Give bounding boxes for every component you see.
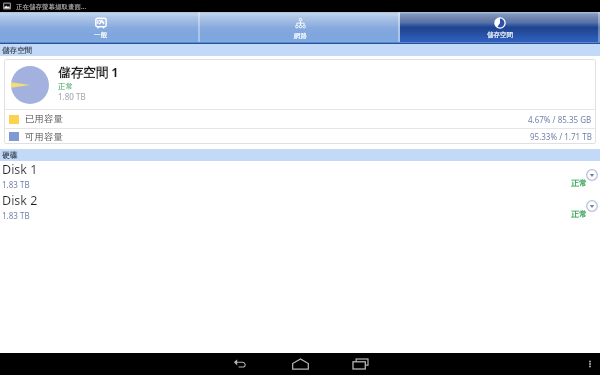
staticText: 1.83 TB <box>2 179 30 190</box>
staticText: 4.67% / 85.35 GB <box>528 114 592 125</box>
staticText: Disk 2 <box>2 192 38 209</box>
button[interactable]: 已用容量 <box>4 110 596 128</box>
button[interactable]: Recent apps <box>347 353 373 375</box>
button[interactable]: Back <box>227 353 253 375</box>
button[interactable]: Disk 2 <box>0 192 600 223</box>
staticText: 硬碟 <box>2 151 17 160</box>
staticText: 可用容量 <box>25 131 63 143</box>
other: General <box>95 17 107 29</box>
button[interactable]: 可用容量 <box>4 129 596 144</box>
staticText: 正常 <box>571 209 587 219</box>
button[interactable]: General <box>0 12 200 42</box>
staticText: 1.80 TB <box>58 91 86 102</box>
staticText: Disk 1 <box>2 161 38 178</box>
button[interactable]: Disk 1 <box>0 161 600 192</box>
button[interactable]: More options <box>580 354 600 374</box>
button[interactable]: Home <box>287 353 313 375</box>
button[interactable]: Network <box>200 12 400 42</box>
staticText: 儲存空間 1 <box>58 64 119 81</box>
button[interactable]: 儲存空間 1 <box>4 59 596 109</box>
staticText: 儲存空間 <box>487 31 513 39</box>
button[interactable]: Storage <box>400 12 600 42</box>
staticText: 儲存空間 <box>2 46 32 55</box>
other: Storage <box>494 17 506 29</box>
staticText: 1.83 TB <box>2 210 30 221</box>
other: Network <box>294 17 307 30</box>
staticText: 正常 <box>58 82 73 91</box>
staticText: 已用容量 <box>25 113 63 125</box>
staticText: 一般 <box>94 31 107 39</box>
staticText: 網路 <box>294 32 307 40</box>
staticText: 正在儲存螢幕擷取畫面… <box>16 2 87 11</box>
staticText: 95.33% / 1.71 TB <box>530 131 592 142</box>
button[interactable]: Expand <box>586 200 598 212</box>
staticText: 正常 <box>571 178 587 188</box>
button[interactable]: Expand <box>586 169 598 181</box>
